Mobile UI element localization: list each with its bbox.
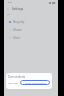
staticText: Turn on alerts xyxy=(8,75,25,79)
staticText: Allow notifications xyxy=(25,81,46,84)
staticText: Silent xyxy=(13,36,20,40)
button[interactable]: Back xyxy=(4,5,11,12)
staticText: Ring only xyxy=(13,20,25,24)
button[interactable]: Vibrate xyxy=(4,26,58,33)
button[interactable]: Not now xyxy=(8,81,18,84)
staticText: On xyxy=(7,13,11,16)
button[interactable]: Ring only xyxy=(4,18,58,25)
staticText: Vibrate xyxy=(13,28,22,32)
button[interactable]: Silent xyxy=(4,34,58,41)
button[interactable]: Allow notifications xyxy=(20,80,50,85)
staticText: 9:41 xyxy=(8,1,13,4)
staticText: Not now xyxy=(8,81,18,84)
staticText: Settings xyxy=(12,7,24,11)
